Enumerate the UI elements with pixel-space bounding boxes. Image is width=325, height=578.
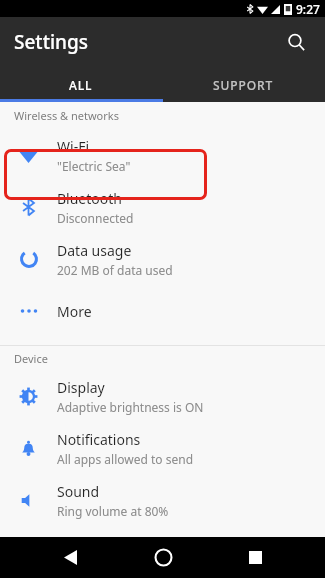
staticText: Ring volume at 80% [57, 503, 169, 519]
staticText: Notifications [57, 430, 141, 449]
staticText: Disconnected [57, 210, 134, 226]
button[interactable]: Recent apps [233, 537, 277, 578]
staticText: Settings [14, 29, 88, 55]
staticText: Data usage [57, 241, 132, 260]
staticText: Bluetooth [57, 189, 122, 208]
staticText: Display [57, 378, 105, 397]
staticText: More [57, 302, 92, 321]
staticText: All apps allowed to send [57, 451, 194, 467]
staticText: Wireless & networks [14, 108, 119, 123]
button[interactable]: Bluetooth [0, 181, 325, 233]
button[interactable]: Home [141, 537, 185, 578]
button[interactable]: SUPPORT [162, 67, 325, 102]
button[interactable]: More [0, 285, 325, 337]
staticText: Wi-Fi [57, 137, 90, 156]
staticText: Adaptive brightness is ON [57, 399, 204, 415]
staticText: 202 MB of data used [57, 262, 173, 278]
button[interactable]: Back [48, 537, 92, 578]
button[interactable]: Search [276, 22, 316, 62]
staticText: ALL [69, 77, 93, 93]
staticText: Sound [57, 482, 100, 501]
staticText: 9:27 [296, 1, 320, 17]
staticText: "Electric Sea" [57, 158, 131, 174]
button[interactable]: Sound [0, 474, 325, 526]
button[interactable]: Wi-Fi [0, 129, 325, 181]
staticText: Device [14, 351, 48, 366]
button[interactable]: Notifications [0, 422, 325, 474]
button[interactable]: Display [0, 370, 325, 422]
button[interactable]: Data usage [0, 233, 325, 285]
staticText: SUPPORT [213, 77, 274, 93]
button[interactable]: ALL [0, 67, 162, 102]
